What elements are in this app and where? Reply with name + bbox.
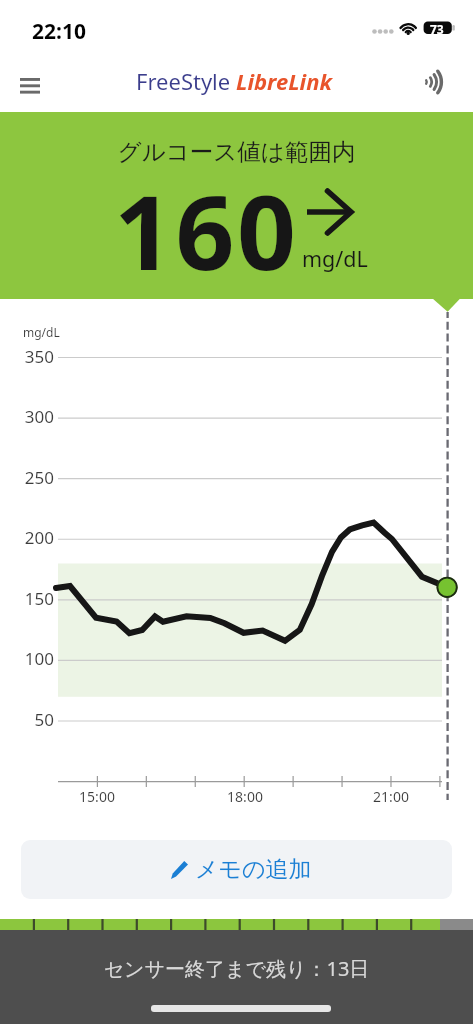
staticText: FreeStyle — [136, 66, 231, 96]
button[interactable]: メモの追加 — [21, 840, 452, 899]
staticText: mg/dL — [302, 244, 368, 273]
staticText: 50 — [6, 708, 54, 731]
staticText: LibreLink — [236, 66, 332, 96]
staticText: 18:00 — [215, 787, 275, 806]
staticText: 22:10 — [32, 17, 86, 46]
staticText: 21:00 — [361, 787, 421, 806]
staticText: グルコース値は範囲内 — [0, 137, 473, 167]
staticText: 100 — [6, 647, 54, 670]
staticText: センサー終了まで残り：13日 — [0, 955, 473, 982]
staticText: 15:00 — [67, 787, 127, 806]
staticText: 300 — [6, 405, 54, 428]
button[interactable]: Menu — [8, 64, 52, 108]
staticText: 160 — [114, 160, 299, 300]
staticText: 200 — [6, 526, 54, 549]
staticText: 150 — [6, 587, 54, 610]
staticText: 350 — [6, 345, 54, 368]
staticText: メモの追加 — [195, 855, 312, 884]
staticText: 250 — [6, 466, 54, 489]
staticText: mg/dL — [23, 324, 60, 340]
staticText: 73 — [430, 21, 444, 34]
button[interactable]: Scan sensor — [413, 60, 457, 104]
